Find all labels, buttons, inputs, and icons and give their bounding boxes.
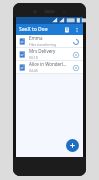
staticText: Alice in Wonderland <box>29 61 69 67</box>
button[interactable]: Alice in Wonderland <box>16 61 83 73</box>
staticText: Files transferring <box>29 42 57 47</box>
button[interactable]: Add <box>66 139 79 152</box>
button[interactable]: Mrs Delivery <box>16 48 83 60</box>
button[interactable]: More options <box>72 25 82 35</box>
button[interactable]: Transfer progress <box>71 37 80 46</box>
button[interactable]: Item options <box>71 63 80 72</box>
button[interactable]: Item options <box>71 50 80 59</box>
staticText: 00:18 <box>29 55 38 60</box>
button[interactable]: Documents <box>62 25 72 35</box>
button[interactable]: Emma <box>16 35 83 47</box>
staticText: Mrs Delivery <box>29 48 56 54</box>
staticText: SeeX to Dee <box>19 26 48 33</box>
staticText: Emma <box>29 35 43 41</box>
staticText: 04:45 <box>29 68 38 73</box>
